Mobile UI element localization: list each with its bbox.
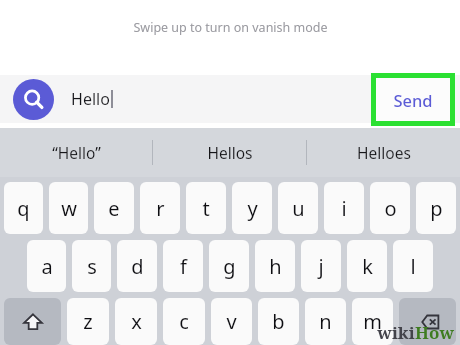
button[interactable]: q xyxy=(4,182,43,234)
button[interactable]: i xyxy=(324,182,364,234)
staticText: n xyxy=(319,308,332,335)
button[interactable]: l xyxy=(393,240,433,292)
button[interactable]: b xyxy=(258,298,299,345)
button[interactable]: Search xyxy=(13,79,54,120)
staticText: wiki xyxy=(377,321,415,344)
staticText: m xyxy=(363,308,382,335)
button[interactable]: y xyxy=(232,182,272,234)
button[interactable]: o xyxy=(370,182,410,234)
staticText: q xyxy=(17,195,30,222)
button[interactable]: r xyxy=(140,182,180,234)
staticText: t xyxy=(202,195,210,222)
button[interactable]: u xyxy=(278,182,318,234)
staticText: w xyxy=(61,195,77,222)
button[interactable]: v xyxy=(211,298,252,345)
staticText: c xyxy=(179,308,189,335)
button[interactable]: d xyxy=(117,240,157,292)
button[interactable]: e xyxy=(94,182,134,234)
staticText: v xyxy=(226,308,237,335)
button[interactable]: Hellos xyxy=(153,128,306,177)
staticText: u xyxy=(292,195,305,222)
button[interactable]: f xyxy=(163,240,203,292)
button[interactable]: w xyxy=(49,182,88,234)
button[interactable]: c xyxy=(163,298,205,345)
button[interactable]: g xyxy=(209,240,249,292)
button[interactable]: k xyxy=(347,240,387,292)
button[interactable]: h xyxy=(255,240,295,292)
button[interactable]: Helloes xyxy=(307,128,460,177)
staticText: How xyxy=(415,321,454,344)
button[interactable]: x xyxy=(115,298,157,345)
staticText: d xyxy=(131,253,144,280)
staticText: l xyxy=(410,253,416,280)
staticText: a xyxy=(41,253,53,280)
staticText: e xyxy=(108,195,120,222)
button[interactable]: m xyxy=(352,298,393,345)
staticText: x xyxy=(131,308,142,335)
staticText: b xyxy=(272,308,285,335)
staticText: r xyxy=(156,195,165,222)
button[interactable]: s xyxy=(72,240,111,292)
staticText: Send xyxy=(393,89,433,111)
staticText: i xyxy=(341,195,347,222)
staticText: p xyxy=(430,195,443,222)
button[interactable]: n xyxy=(305,298,346,345)
button[interactable]: z xyxy=(67,298,109,345)
staticText: h xyxy=(269,253,282,280)
staticText: f xyxy=(180,253,187,280)
staticText: Swipe up to turn on vanish mode xyxy=(133,19,328,36)
staticText: j xyxy=(318,253,324,280)
button[interactable]: “Hello” xyxy=(0,128,152,177)
staticText: Helloes xyxy=(357,142,411,163)
button[interactable]: p xyxy=(416,182,456,234)
staticText: k xyxy=(362,253,373,280)
button[interactable]: j xyxy=(301,240,341,292)
staticText: s xyxy=(87,253,97,280)
staticText: o xyxy=(384,195,397,222)
button[interactable]: Shift xyxy=(4,298,61,345)
staticText: Hellos xyxy=(207,142,253,163)
button[interactable]: t xyxy=(186,182,226,234)
button[interactable]: Backspace xyxy=(399,298,456,345)
button[interactable]: a xyxy=(27,240,66,292)
staticText: y xyxy=(247,195,258,222)
staticText: “Hello” xyxy=(52,142,101,163)
staticText: Hello xyxy=(71,88,110,110)
staticText: z xyxy=(83,308,93,335)
button[interactable]: Send xyxy=(376,78,450,121)
staticText: g xyxy=(223,253,236,280)
